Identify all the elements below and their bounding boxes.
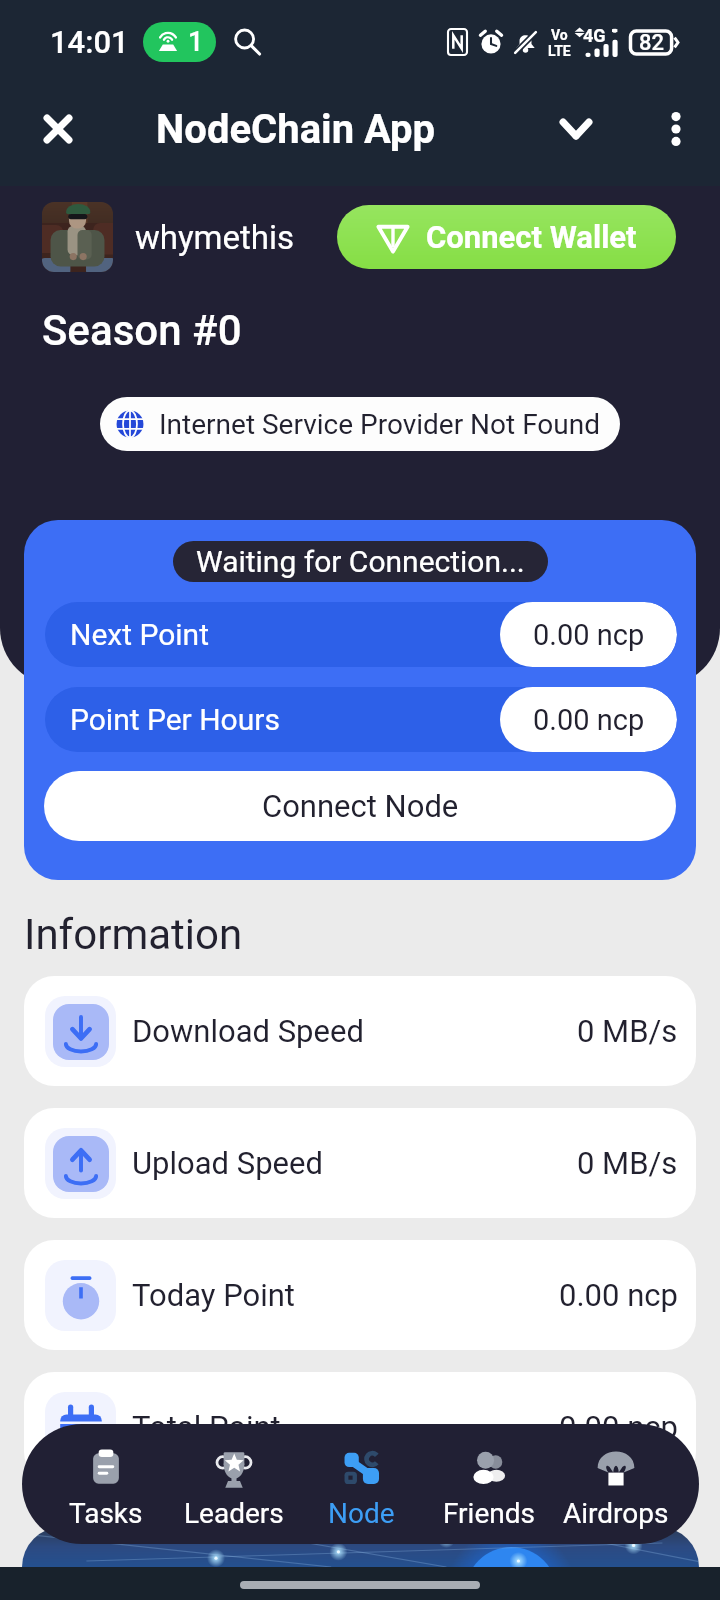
staticText: Waiting for Connection... <box>196 544 525 579</box>
staticText: Vo <box>551 27 568 43</box>
button[interactable]: Expand <box>541 78 611 180</box>
staticText: Internet Service Provider Not Found <box>159 408 600 441</box>
staticText: 0.00 ncp <box>533 618 645 652</box>
staticText: 14:01 <box>50 24 129 60</box>
staticText: Today Point <box>132 1277 295 1313</box>
staticText: whymethis <box>135 218 295 257</box>
button[interactable]: Tasks <box>42 1424 170 1544</box>
staticText: Airdrops <box>563 1497 669 1530</box>
staticText: 4G <box>583 25 606 46</box>
button[interactable]: Today Point <box>24 1240 696 1350</box>
staticText: Upload Speed <box>132 1145 323 1181</box>
button[interactable]: Friends <box>425 1424 552 1544</box>
button[interactable]: Airdrops <box>552 1424 679 1544</box>
staticText: Total Point <box>132 1409 281 1445</box>
staticText: 0 MB/s <box>577 1145 678 1181</box>
staticText: Next Point <box>70 617 209 652</box>
staticText: Friends <box>443 1497 535 1530</box>
staticText: Information <box>24 910 243 959</box>
button[interactable]: Connect Node <box>44 771 676 841</box>
staticText: Tasks <box>69 1497 143 1530</box>
button[interactable]: Upload Speed <box>24 1108 696 1218</box>
button[interactable]: Node <box>298 1424 425 1544</box>
staticText: Connect Node <box>262 788 459 824</box>
staticText: Point Per Hours <box>70 702 280 737</box>
staticText: 1 <box>188 26 204 58</box>
staticText: Season #0 <box>42 306 242 355</box>
button[interactable]: Connect Wallet <box>337 205 676 269</box>
button[interactable]: Close <box>12 78 104 180</box>
button[interactable]: Total Point <box>24 1372 696 1482</box>
button[interactable]: Point Per Hours <box>45 687 677 752</box>
staticText: 0 MB/s <box>577 1013 678 1049</box>
button[interactable]: Next Point <box>45 602 677 667</box>
staticText: Node <box>328 1497 395 1530</box>
button[interactable]: More options <box>645 78 707 180</box>
staticText: Download Speed <box>132 1013 364 1049</box>
staticText: Leaders <box>184 1497 284 1530</box>
button[interactable]: Internet Service Provider Not Found <box>100 397 620 451</box>
button[interactable]: Leaders <box>170 1424 298 1544</box>
staticText: 0.00 ncp <box>559 1409 678 1445</box>
staticText: LTE <box>548 43 571 57</box>
button[interactable]: Download Speed <box>24 976 696 1086</box>
staticText: 82 <box>639 30 665 56</box>
staticText: 0.00 ncp <box>533 703 645 737</box>
staticText: Connect Wallet <box>426 219 637 255</box>
staticText: 0.00 ncp <box>559 1277 678 1313</box>
staticText: NodeChain App <box>156 106 436 153</box>
